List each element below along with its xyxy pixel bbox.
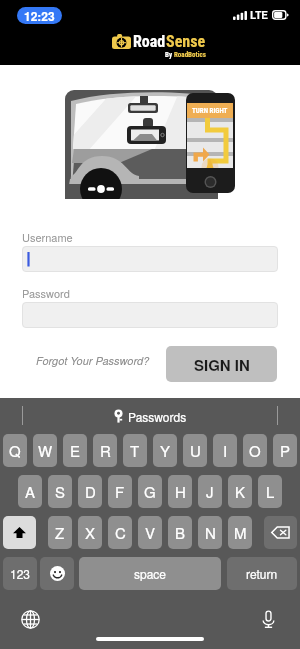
button[interactable]: U: [183, 434, 207, 467]
staticText: I: [223, 440, 228, 461]
button[interactable]: B: [168, 516, 192, 549]
staticText: C: [115, 522, 126, 543]
staticText: 12:23: [24, 7, 55, 24]
staticText: Z: [55, 522, 65, 543]
staticText: T: [130, 440, 140, 461]
button[interactable]: S: [48, 475, 72, 508]
button[interactable]: Emoji: [40, 557, 74, 590]
button[interactable]: O: [243, 434, 267, 467]
button[interactable]: 123: [3, 557, 37, 590]
staticText: E: [70, 440, 81, 461]
button[interactable]: Forgot Your Password?: [36, 353, 150, 369]
button[interactable]: X: [78, 516, 102, 549]
button[interactable]: J: [198, 475, 222, 508]
staticText: Road: [133, 32, 166, 51]
button[interactable]: Passwords: [0, 398, 300, 434]
staticText: LTE: [250, 8, 268, 22]
staticText: U: [190, 440, 201, 461]
staticText: O: [249, 440, 261, 461]
button[interactable]: P: [273, 434, 297, 467]
staticText: RoadBotics: [174, 51, 206, 59]
button[interactable]: N: [198, 516, 222, 549]
button[interactable]: A: [18, 475, 42, 508]
button[interactable]: M: [228, 516, 252, 549]
staticText: N: [205, 522, 216, 543]
staticText: M: [234, 522, 247, 543]
staticText: A: [25, 481, 36, 502]
button[interactable]: Y: [153, 434, 177, 467]
staticText: F: [115, 481, 125, 502]
staticText: return: [246, 565, 278, 582]
staticText: space: [134, 565, 167, 582]
staticText: Username: [22, 229, 73, 245]
staticText: S: [55, 481, 66, 502]
button[interactable]: T: [123, 434, 147, 467]
staticText: H: [175, 481, 186, 502]
staticText: Sense: [166, 32, 206, 51]
button[interactable]: SIGN IN: [166, 346, 277, 382]
button[interactable]: E: [63, 434, 87, 467]
staticText: K: [235, 481, 246, 502]
staticText: TURN RIGHT: [192, 107, 228, 115]
staticText: 123: [10, 565, 31, 582]
staticText: B: [175, 522, 186, 543]
staticText: D: [85, 481, 96, 502]
staticText: Forgot Your Password?: [36, 353, 150, 369]
staticText: By: [165, 51, 174, 59]
button[interactable]: V: [138, 516, 162, 549]
button[interactable]: Shift: [3, 516, 36, 549]
staticText: SIGN IN: [194, 354, 250, 375]
button[interactable]: Change keyboard language: [20, 609, 41, 630]
staticText: Y: [160, 440, 171, 461]
button[interactable]: H: [168, 475, 192, 508]
staticText: R: [100, 440, 111, 461]
staticText: W: [38, 440, 53, 461]
staticText: Q: [9, 440, 21, 461]
button[interactable]: return: [227, 557, 297, 590]
button[interactable]: Z: [48, 516, 72, 549]
staticText: Passwords: [128, 408, 187, 425]
button[interactable]: [22, 302, 278, 328]
button[interactable]: K: [228, 475, 252, 508]
staticText: Password: [22, 285, 70, 301]
button[interactable]: space: [79, 557, 221, 590]
button[interactable]: F: [108, 475, 132, 508]
button[interactable]: I: [213, 434, 237, 467]
button[interactable]: Q: [3, 434, 27, 467]
staticText: L: [266, 481, 275, 502]
button[interactable]: C: [108, 516, 132, 549]
staticText: P: [280, 440, 291, 461]
button[interactable]: Dictation: [258, 609, 279, 630]
staticText: G: [144, 481, 156, 502]
staticText: V: [145, 522, 156, 543]
button[interactable]: W: [33, 434, 57, 467]
button[interactable]: G: [138, 475, 162, 508]
staticText: J: [206, 481, 214, 502]
staticText: X: [85, 522, 96, 543]
button[interactable]: [22, 246, 278, 272]
button[interactable]: D: [78, 475, 102, 508]
button[interactable]: L: [258, 475, 282, 508]
button[interactable]: R: [93, 434, 117, 467]
button[interactable]: Backspace: [264, 516, 297, 549]
